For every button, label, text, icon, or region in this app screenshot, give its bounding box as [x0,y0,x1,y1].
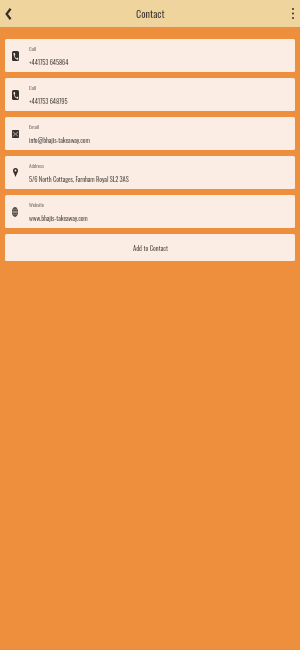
staticText: +441753 645864 [29,57,69,67]
button[interactable]: Back [0,0,17,27]
staticText: Email [29,123,40,131]
button[interactable]: Address [5,156,295,189]
staticText: www.bhajis-takeaway.com [29,213,88,223]
staticText: Contact [136,6,165,21]
staticText: Add to Contact [133,243,168,253]
button[interactable]: Email [5,117,295,150]
staticText: 5/6 North Cottages, Farnham Royal SL2 3A… [29,174,129,184]
staticText: Call [29,84,37,92]
button[interactable]: More options [285,0,300,27]
staticText: Call [29,45,37,53]
staticText: Address [29,162,44,170]
button[interactable]: Add to Contact [5,234,295,261]
button[interactable]: Call [5,39,295,72]
staticText: +441753 648795 [29,96,68,106]
button[interactable]: Website [5,195,295,228]
staticText: info@bhajis-takeaway.com [29,135,90,145]
button[interactable]: Call [5,78,295,111]
staticText: Website [29,201,45,209]
